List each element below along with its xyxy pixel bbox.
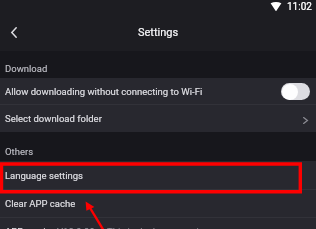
- staticText: APP version: [5, 226, 57, 229]
- staticText: Settings: [138, 26, 179, 39]
- staticText: Allow downloading without connecting to …: [5, 86, 203, 97]
- button[interactable]: Language settings: [0, 161, 316, 189]
- button[interactable]: Allow downloading without connecting to …: [0, 78, 316, 104]
- button[interactable]: APP version: [0, 218, 316, 229]
- staticText: Clear APP cache: [5, 198, 76, 209]
- button[interactable]: Select download folder: [0, 105, 316, 132]
- staticText: This is the latest version: [107, 226, 210, 229]
- button[interactable]: Back: [0, 18, 28, 46]
- staticText: Others: [5, 146, 34, 157]
- staticText: Language settings: [5, 170, 83, 181]
- staticText: 11:02: [287, 1, 312, 13]
- button[interactable]: Clear APP cache: [0, 190, 316, 217]
- staticText: V18.9.99: [57, 226, 95, 229]
- staticText: Select download folder: [5, 113, 102, 124]
- staticText: Download: [5, 63, 48, 74]
